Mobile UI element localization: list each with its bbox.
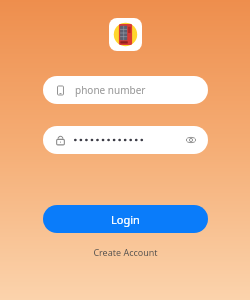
button[interactable]: Create Account — [87, 243, 164, 261]
staticText: Login — [111, 212, 140, 227]
button[interactable]: phone number — [43, 76, 208, 104]
staticText: phone number — [75, 83, 146, 97]
button[interactable]: Show password — [183, 132, 199, 148]
button[interactable]: Login — [43, 205, 208, 233]
button[interactable]: Show password — [43, 126, 208, 154]
button[interactable]: App logo — [109, 18, 142, 51]
